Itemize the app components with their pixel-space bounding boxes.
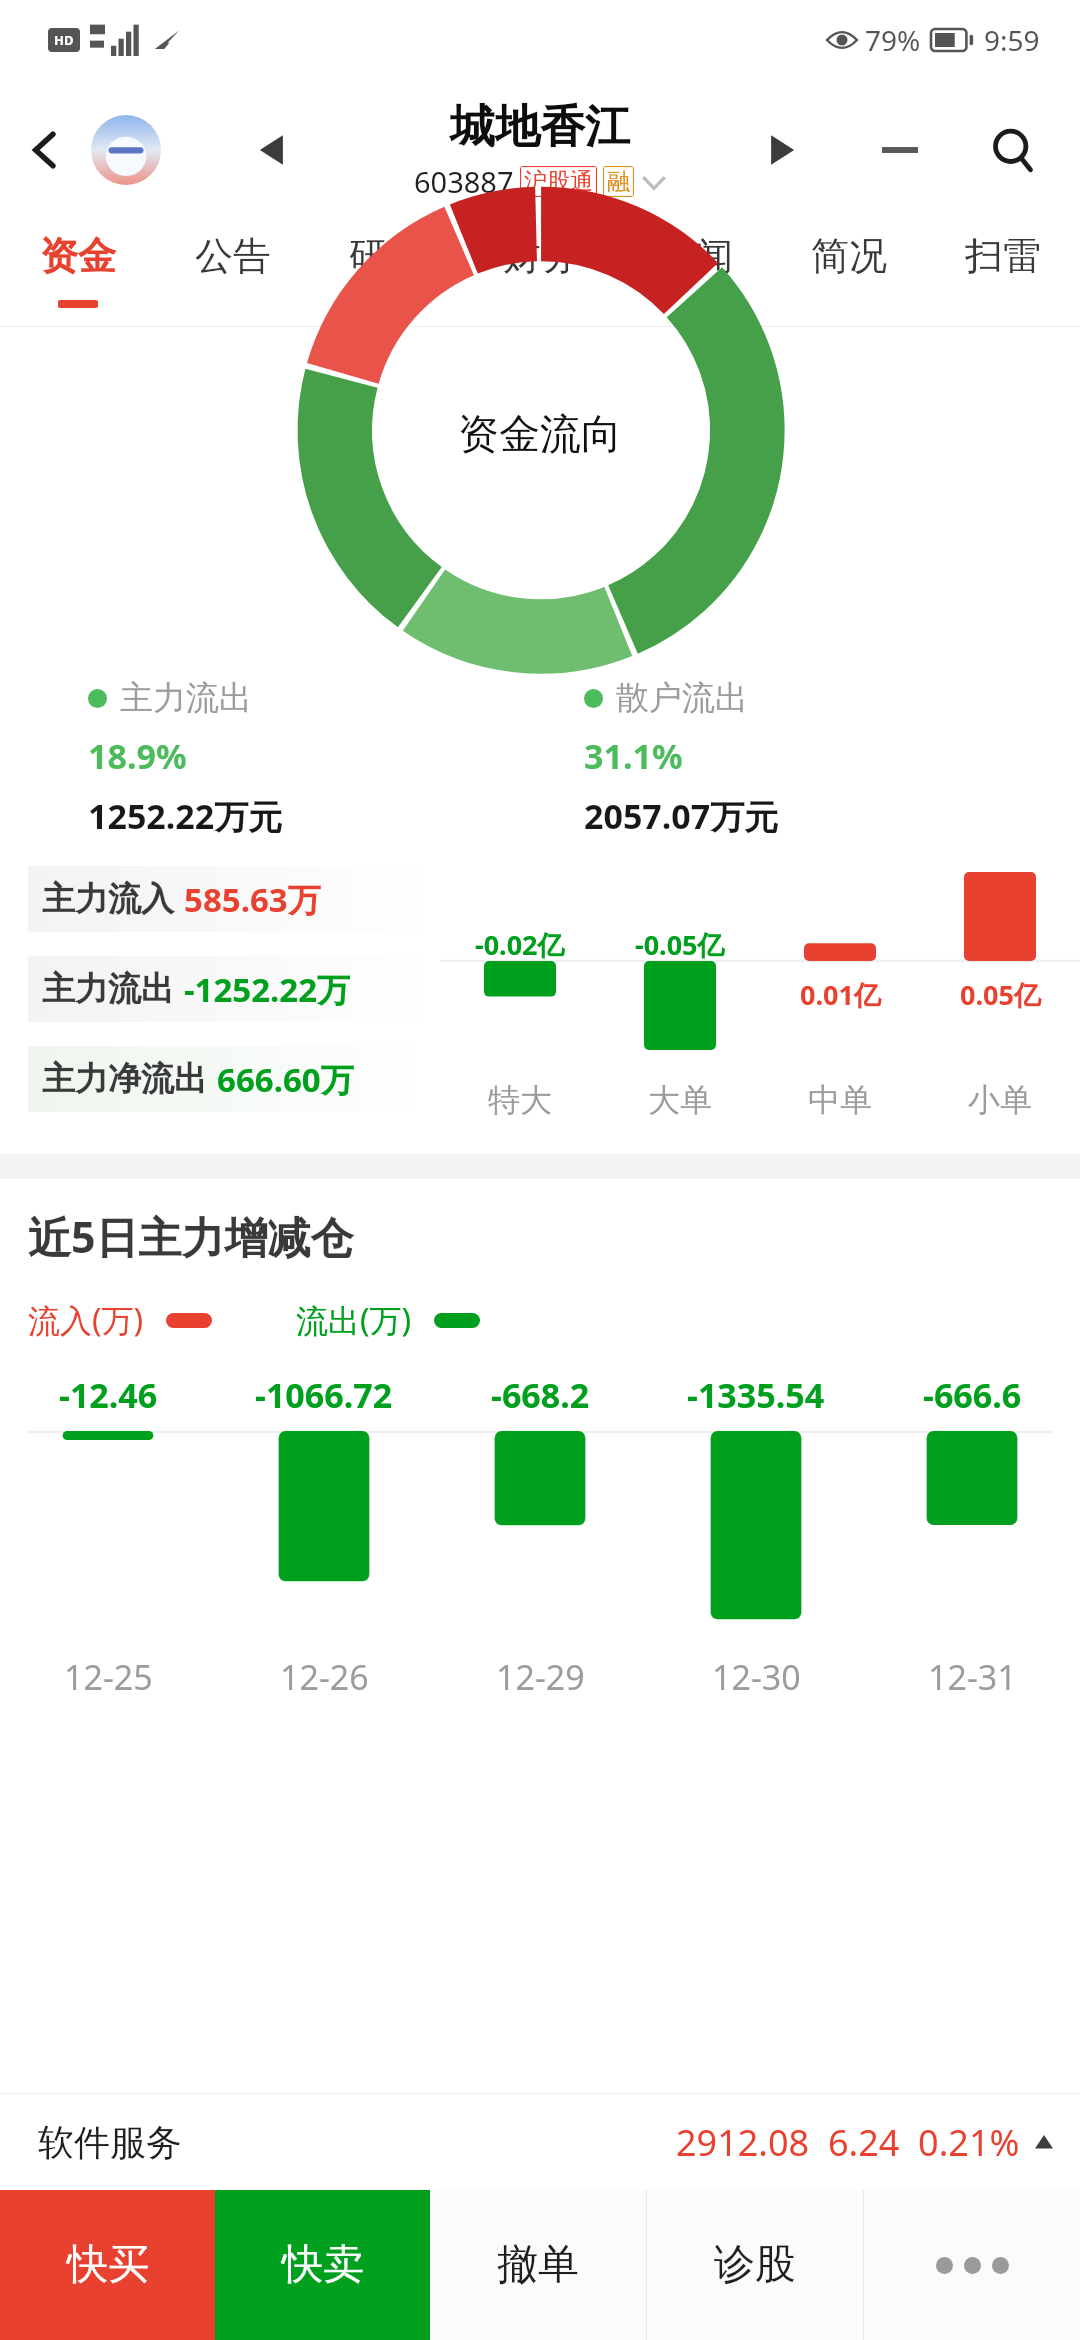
button[interactable]: 新闻 — [618, 220, 772, 326]
staticText: 快买 — [67, 2239, 149, 2291]
staticText: 财务 — [503, 232, 579, 280]
staticText: 主力流出 — [120, 677, 252, 719]
button[interactable]: More options — [864, 2190, 1080, 2340]
staticText: 12-30 — [712, 1654, 801, 1700]
staticText: 12-25 — [64, 1654, 153, 1700]
staticText: 主力流入 — [42, 878, 174, 920]
staticText: 沪股通 — [524, 167, 593, 196]
button[interactable]: 扫雷 — [926, 220, 1080, 326]
button[interactable]: 软件服务 — [0, 2094, 1080, 2190]
button[interactable]: Minimize — [868, 118, 932, 182]
staticText: -0.02亿 — [475, 926, 565, 963]
button[interactable]: 诊股 — [647, 2190, 863, 2340]
staticText: 31.1% — [584, 733, 683, 779]
staticText: 公告 — [195, 232, 271, 280]
staticText: 简况 — [811, 232, 887, 280]
staticText: 资金 — [40, 232, 116, 280]
button[interactable]: 主力流入 — [42, 866, 440, 932]
staticText: -1066.72 — [255, 1372, 393, 1418]
button[interactable]: 撤单 — [430, 2190, 646, 2340]
button[interactable]: 快卖 — [215, 2190, 430, 2340]
staticText: 撤单 — [497, 2239, 579, 2291]
staticText: -666.6 — [923, 1372, 1022, 1418]
staticText: 585.63万 — [184, 877, 321, 922]
staticText: 研报 — [349, 232, 425, 280]
staticText: 扫雷 — [965, 232, 1041, 280]
button[interactable]: 简况 — [772, 220, 926, 326]
button[interactable]: User avatar — [86, 110, 166, 190]
staticText: 9:59 — [984, 21, 1040, 59]
staticText: 新闻 — [657, 232, 733, 280]
button[interactable]: Back — [12, 117, 78, 183]
button[interactable]: Previous stock — [240, 118, 304, 182]
button[interactable]: 快买 — [0, 2190, 215, 2340]
staticText: 诊股 — [714, 2239, 796, 2291]
staticText: 0.01亿 — [800, 976, 881, 1013]
button[interactable]: Next stock — [750, 118, 814, 182]
staticText: 12-31 — [928, 1654, 1017, 1700]
staticText: 小单 — [968, 1080, 1032, 1120]
staticText: HD — [54, 31, 74, 49]
staticText: 0.05亿 — [960, 976, 1041, 1013]
button[interactable]: 主力流出 — [42, 956, 440, 1022]
staticText: 资金流向 — [458, 409, 622, 461]
staticText: 散户流出 — [616, 677, 748, 719]
button[interactable]: 公告 — [155, 220, 310, 326]
staticText: -12.46 — [59, 1372, 158, 1418]
staticText: 1252.22万元 — [88, 793, 283, 839]
staticText: -1335.54 — [687, 1372, 825, 1418]
staticText: 软件服务 — [38, 2120, 182, 2165]
staticText: 2912.08 6.24 0.21% — [676, 2118, 1020, 2167]
staticText: 12-26 — [280, 1654, 369, 1700]
button[interactable]: Search — [976, 113, 1050, 187]
button[interactable]: 财务 — [464, 220, 618, 326]
staticText: 大单 — [648, 1080, 712, 1120]
staticText: 近5日主力增减仓 — [28, 1207, 354, 1266]
staticText: 18.9% — [88, 733, 187, 779]
staticText: 特大 — [488, 1080, 552, 1120]
staticText: 流出(万) — [296, 1298, 412, 1342]
button[interactable]: 资金 — [0, 220, 155, 326]
staticText: 城地香江 — [450, 99, 630, 156]
staticText: 主力流出 — [42, 968, 174, 1010]
staticText: 603887 — [414, 162, 514, 201]
staticText: 主力净流出 — [42, 1058, 207, 1100]
staticText: 2057.07万元 — [584, 793, 779, 839]
staticText: 12-29 — [496, 1654, 585, 1700]
staticText: 666.60万 — [217, 1057, 354, 1102]
staticText: 融 — [607, 167, 630, 196]
button[interactable]: 主力净流出 — [42, 1046, 440, 1112]
staticText: 流入(万) — [28, 1298, 144, 1342]
staticText: 中单 — [808, 1080, 872, 1120]
staticText: 79% — [865, 21, 921, 59]
button[interactable]: 研报 — [310, 220, 464, 326]
staticText: 快卖 — [282, 2239, 364, 2291]
staticText: -1252.22万 — [184, 967, 351, 1012]
staticText: -668.2 — [491, 1372, 590, 1418]
staticText: -0.05亿 — [635, 926, 725, 963]
